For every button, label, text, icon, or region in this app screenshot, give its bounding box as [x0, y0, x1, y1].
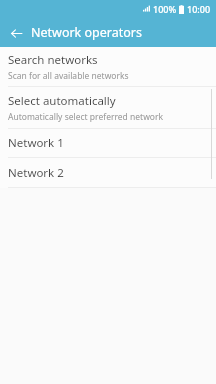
- button[interactable]: Network 2: [0, 158, 216, 187]
- staticText: Network 2: [8, 165, 64, 181]
- staticText: 10:00: [187, 3, 211, 15]
- button[interactable]: Search networks: [0, 47, 216, 86]
- staticText: Network operators: [31, 24, 142, 41]
- staticText: Search networks: [8, 52, 98, 68]
- button[interactable]: Back: [4, 21, 28, 45]
- staticText: Automatically select preferred network: [8, 111, 164, 123]
- staticText: Network 1: [8, 135, 64, 151]
- staticText: Scan for all available networks: [8, 70, 129, 82]
- button[interactable]: Network 1: [0, 129, 216, 157]
- staticText: 100%: [153, 3, 177, 15]
- button[interactable]: Select automatically: [0, 87, 216, 128]
- staticText: Select automatically: [8, 93, 116, 109]
